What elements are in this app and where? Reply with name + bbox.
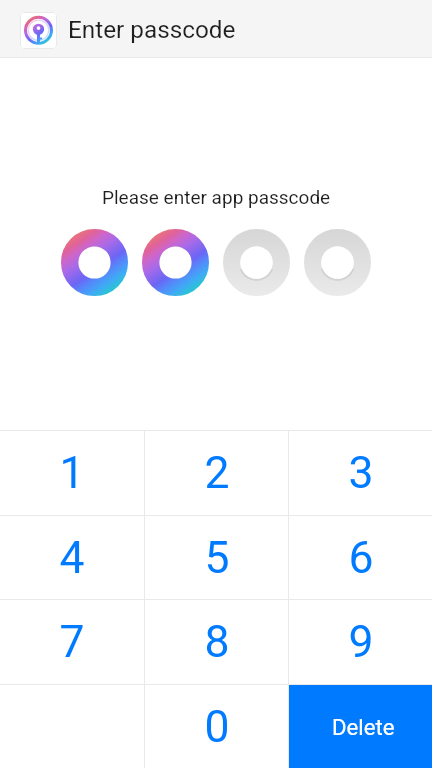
staticText: 3 <box>348 447 374 499</box>
staticText: 7 <box>59 616 85 668</box>
staticText: 2 <box>204 447 230 499</box>
staticText: 8 <box>204 616 230 668</box>
button[interactable]: 6 <box>289 516 432 599</box>
button[interactable]: 3 <box>289 431 432 515</box>
button[interactable]: 5 <box>145 516 288 599</box>
staticText: 0 <box>204 701 230 753</box>
button[interactable]: 4 <box>0 516 144 599</box>
button[interactable]: 1 <box>0 431 144 515</box>
button[interactable]: 2 <box>145 431 288 515</box>
button[interactable]: 7 <box>0 600 144 684</box>
staticText: Delete <box>332 714 395 740</box>
staticText: 4 <box>59 532 85 584</box>
staticText: 1 <box>59 447 85 499</box>
staticText: 6 <box>348 532 374 584</box>
button[interactable]: 8 <box>145 600 288 684</box>
button[interactable]: 9 <box>289 600 432 684</box>
staticText: Please enter app passcode <box>102 186 331 208</box>
staticText: 9 <box>348 616 374 668</box>
button[interactable]: Delete <box>289 685 432 768</box>
other: App icon <box>20 12 57 49</box>
button[interactable]: 0 <box>145 685 288 768</box>
staticText: 5 <box>204 532 230 584</box>
staticText: Enter passcode <box>68 15 236 43</box>
